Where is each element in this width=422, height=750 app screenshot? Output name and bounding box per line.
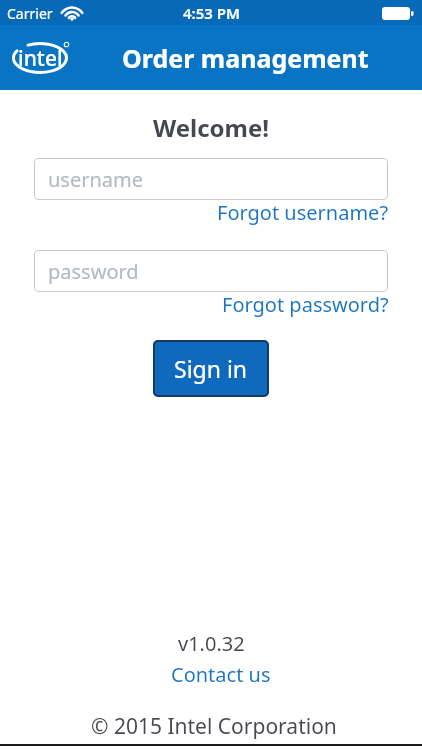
staticText: v1.0.32: [178, 630, 245, 657]
staticText: Carrier: [7, 4, 53, 23]
staticText: Sign in: [174, 353, 248, 384]
staticText: username: [48, 166, 144, 193]
staticText: © 2015 Intel Corporation: [91, 712, 337, 741]
staticText: 4:53 PM: [183, 3, 240, 23]
staticText: Welcome!: [153, 111, 270, 144]
staticText: password: [48, 258, 139, 285]
button[interactable]: username: [34, 158, 388, 200]
button[interactable]: password: [34, 250, 388, 292]
staticText: Order management: [122, 41, 369, 75]
button[interactable]: Forgot username?: [217, 199, 389, 226]
button[interactable]: Forgot password?: [222, 291, 389, 318]
button[interactable]: Contact us: [171, 661, 271, 688]
button[interactable]: Sign in: [153, 340, 269, 397]
staticText: intel: [18, 44, 63, 73]
